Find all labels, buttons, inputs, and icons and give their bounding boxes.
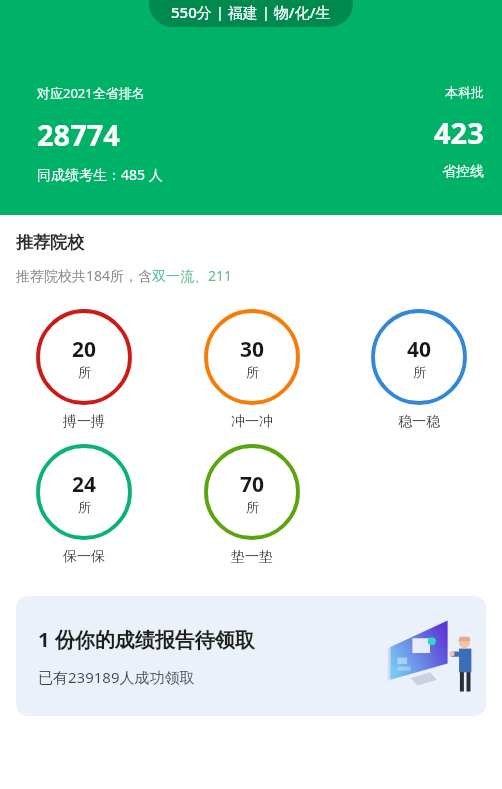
staticText: 推荐院校 (16, 232, 84, 253)
staticText: 28774 (37, 115, 120, 154)
staticText: 本科批 (445, 84, 484, 100)
staticText: 保一保 (63, 548, 105, 566)
button[interactable]: 30 (168, 310, 335, 431)
button[interactable]: 40 (335, 310, 502, 431)
staticText: 所 (246, 364, 259, 380)
staticText: 40 (407, 335, 432, 364)
staticText: 省控线 (442, 163, 484, 181)
staticText: 已有239189人成功领取 (38, 667, 195, 687)
staticText: 24 (72, 470, 97, 499)
staticText: 所 (246, 499, 259, 515)
staticText: 423 (434, 113, 484, 152)
button[interactable]: 1 份你的成绩报告待领取 (16, 596, 486, 716)
staticText: 30 (240, 335, 265, 364)
staticText: 20 (72, 335, 97, 364)
staticText: 搏一搏 (63, 413, 105, 431)
staticText: 冲一冲 (231, 413, 273, 431)
button[interactable]: 550分 | 福建 | 物/化/生 (149, 0, 353, 27)
staticText: 所 (78, 499, 91, 515)
staticText: 70 (240, 470, 265, 499)
staticText: 同成绩考生：485 人 (37, 165, 163, 184)
button[interactable]: 70 (168, 445, 335, 566)
staticText: 推荐院校共184所，含双一流、211 (16, 266, 233, 285)
staticText: 对应2021全省排名 (37, 84, 145, 102)
button[interactable]: 24 (0, 445, 168, 566)
staticText: 550分 | 福建 | 物/化/生 (171, 2, 331, 22)
staticText: 垫一垫 (231, 548, 273, 566)
staticText: 1 份你的成绩报告待领取 (38, 626, 255, 653)
staticText: 所 (78, 364, 91, 380)
button[interactable]: 20 (0, 310, 168, 431)
staticText: 所 (413, 364, 426, 380)
staticText: 稳一稳 (398, 413, 440, 431)
other: 成绩报告插图 (386, 619, 474, 693)
